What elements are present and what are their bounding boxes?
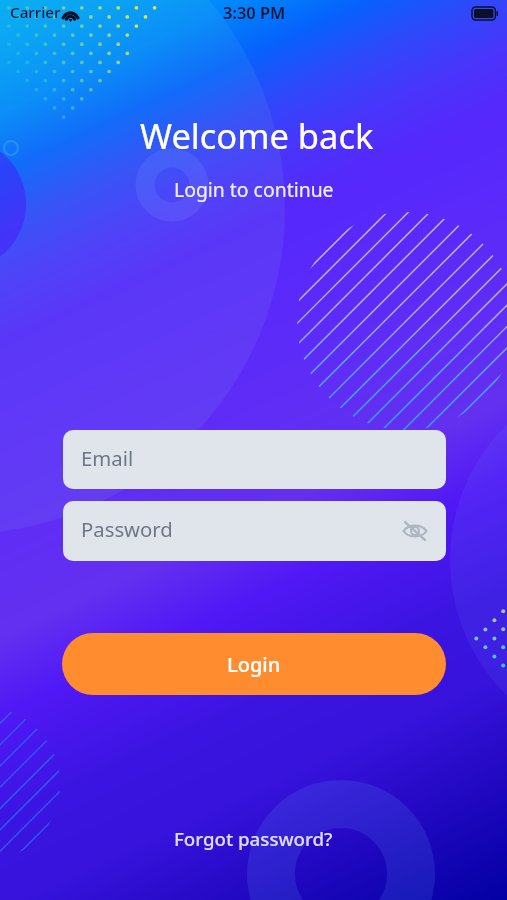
button[interactable]: Password [63,501,446,561]
staticText: Login to continue [174,176,334,202]
button[interactable]: Email [63,430,446,489]
staticText: Forgot password? [174,826,333,851]
staticText: 3:30 PM [223,1,286,23]
staticText: Login [227,651,281,678]
staticText: Carrier [10,2,61,23]
staticText: Password [81,515,173,543]
staticText: Welcome back [140,112,374,159]
button[interactable]: Show password [400,516,430,546]
staticText: Email [81,444,134,472]
button[interactable]: Forgot password? [160,818,347,859]
button[interactable]: Login [62,633,446,695]
